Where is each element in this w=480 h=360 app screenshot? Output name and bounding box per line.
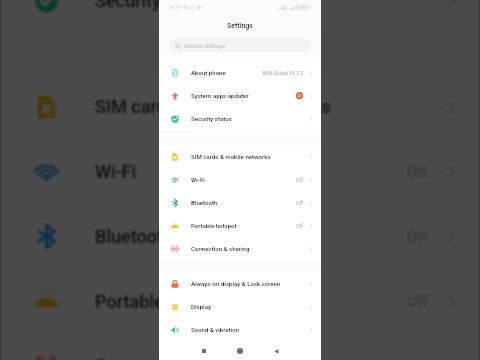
staticText: Connection & sharing <box>191 245 250 252</box>
staticText: Wi-Fi <box>191 176 205 183</box>
staticText: Sound & vibration <box>191 326 240 333</box>
staticText: Bluetooth <box>191 199 218 206</box>
button[interactable]: Connection & sharing <box>159 237 321 260</box>
button[interactable]: Wi-Fi <box>159 168 321 191</box>
button[interactable]: Wi-Fi <box>0 139 480 204</box>
staticText: SIM cards & mobile networks <box>191 153 271 160</box>
button[interactable]: Search settings <box>169 38 311 52</box>
button[interactable]: SIM cards & mobile networks <box>0 75 480 139</box>
staticText: Off <box>407 293 428 309</box>
staticText: MIUI Global 10.2.3 <box>262 70 303 76</box>
button[interactable]: Sound & vibration <box>159 318 321 341</box>
button[interactable]: System apps updater <box>159 84 321 107</box>
staticText: Portable hotspot <box>191 222 237 229</box>
button[interactable]: Portable hotspot <box>159 214 321 237</box>
button[interactable]: Back <box>267 342 285 360</box>
button[interactable]: Security status <box>0 0 480 33</box>
button[interactable]: About phone <box>159 61 321 84</box>
button[interactable]: SIM cards & mobile networks <box>159 145 321 168</box>
staticText: System apps updater <box>191 92 249 99</box>
staticText: Always-on display & Lock screen <box>191 280 281 287</box>
button[interactable]: Always-on display & Lock screen <box>159 272 321 295</box>
staticText: Settings <box>227 22 253 30</box>
staticText: Off <box>296 223 303 229</box>
button[interactable]: Bluetooth <box>159 191 321 214</box>
staticText: Off <box>407 164 428 180</box>
staticText: Wi-Fi <box>95 162 137 182</box>
staticText: 10:14 <box>168 4 181 10</box>
staticText: SIM cards & mobile networks <box>95 97 331 117</box>
staticText: Off <box>407 228 428 245</box>
button[interactable]: Security status <box>159 107 321 130</box>
button[interactable]: Connection & sharing <box>0 334 480 360</box>
button[interactable]: Recent apps <box>195 342 213 360</box>
staticText: Search settings <box>184 42 226 49</box>
staticText: 4G <box>183 5 189 10</box>
button[interactable]: Display <box>159 295 321 318</box>
staticText: About phone <box>191 69 226 76</box>
staticText: Portable hotspot <box>95 291 231 311</box>
button[interactable]: Portable hotspot <box>0 269 480 334</box>
staticText: Security status <box>95 0 216 11</box>
button[interactable]: Home <box>231 342 249 360</box>
staticText: Off <box>296 177 303 183</box>
staticText: Off <box>296 200 303 206</box>
staticText: Display <box>191 303 211 310</box>
button[interactable]: Bluetooth <box>0 204 480 269</box>
staticText: Bluetooth <box>95 226 174 247</box>
staticText: Connection & sharing <box>95 356 268 360</box>
staticText: Security status <box>191 115 232 122</box>
